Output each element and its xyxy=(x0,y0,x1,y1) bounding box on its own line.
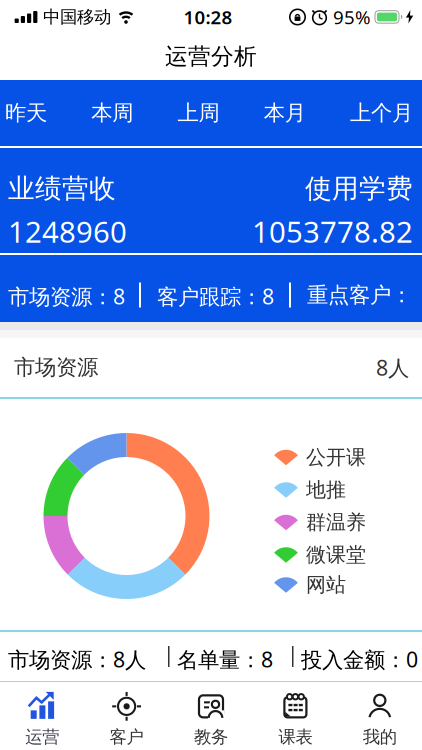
button[interactable]: 本周 xyxy=(91,100,133,126)
staticText: 网站 xyxy=(306,572,346,597)
staticText: 我的 xyxy=(363,726,397,748)
staticText: 上个月 xyxy=(350,100,413,126)
staticText: 运营 xyxy=(25,726,59,748)
staticText: 客户 xyxy=(110,726,144,748)
staticText: 本月 xyxy=(264,100,306,126)
staticText: 微课堂 xyxy=(306,542,366,567)
staticText: 10:28 xyxy=(183,5,232,29)
staticText: 1053778.82 xyxy=(252,212,413,251)
staticText: 本周 xyxy=(91,100,133,126)
staticText: 上周 xyxy=(177,100,219,126)
staticText: 业绩营收 xyxy=(8,172,116,205)
button[interactable]: 客户 xyxy=(84,682,169,749)
staticText: 中国移动 xyxy=(43,6,111,28)
staticText: 重点客户： xyxy=(307,282,412,308)
button[interactable]: 上周 xyxy=(177,100,219,126)
button[interactable]: 教务 xyxy=(169,682,253,749)
staticText: 教务 xyxy=(194,726,228,748)
staticText: 课表 xyxy=(278,726,312,748)
staticText: 市场资源：8人 xyxy=(8,645,146,673)
button[interactable]: 我的 xyxy=(338,682,422,749)
staticText: 群温养 xyxy=(306,510,366,535)
button[interactable]: 昨天 xyxy=(5,100,47,126)
button[interactable]: 本月 xyxy=(264,100,306,126)
staticText: 名单量：8 xyxy=(177,645,273,673)
staticText: 公开课 xyxy=(306,445,366,470)
staticText: 投入金额：0 xyxy=(301,645,418,673)
button[interactable]: 课表 xyxy=(253,682,338,749)
staticText: 客户跟踪：8 xyxy=(157,282,274,310)
staticText: 昨天 xyxy=(5,100,47,126)
staticText: 使用学费 xyxy=(305,172,413,205)
staticText: 市场资源 xyxy=(14,354,98,381)
button[interactable]: 上个月 xyxy=(350,100,413,126)
staticText: 95% xyxy=(333,5,371,29)
staticText: 1248960 xyxy=(8,212,127,251)
staticText: 8人 xyxy=(376,353,409,382)
button[interactable]: 运营 xyxy=(0,682,84,749)
staticText: 市场资源：8 xyxy=(8,282,125,310)
staticText: 地推 xyxy=(306,477,346,502)
staticText: 运营分析 xyxy=(165,43,257,70)
